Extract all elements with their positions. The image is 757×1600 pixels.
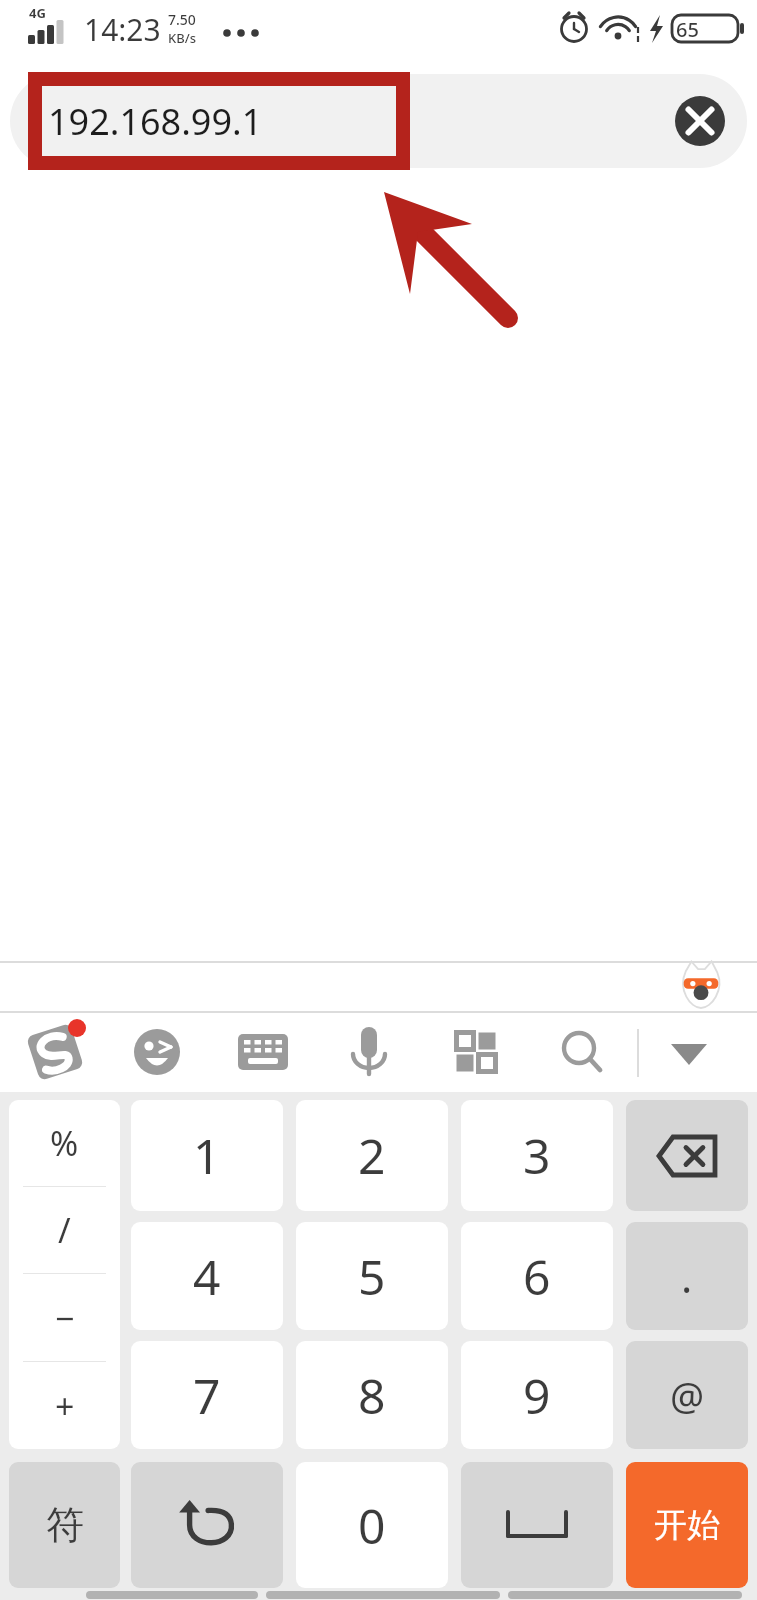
staticText: 3 [523, 1123, 551, 1188]
staticText: 14:23 [84, 9, 161, 50]
staticText: % [50, 1120, 79, 1166]
button[interactable]: Keyboard layout [227, 1016, 299, 1088]
button[interactable]: Sogou mascot [677, 960, 725, 1008]
button[interactable]: More functions [440, 1016, 512, 1088]
staticText: 符 [46, 1501, 84, 1549]
staticText: 开始 [654, 1504, 720, 1546]
button[interactable]: Clear text [675, 96, 725, 146]
staticText: 8 [358, 1363, 386, 1428]
staticText: − [55, 1295, 75, 1341]
button[interactable]: + [9, 1362, 120, 1449]
button[interactable]: Sogou input settings [19, 1016, 91, 1088]
button[interactable]: 3 [461, 1100, 613, 1211]
button[interactable]: 6 [461, 1222, 613, 1330]
button[interactable]: 8 [296, 1341, 448, 1449]
staticText: 4 [193, 1244, 221, 1309]
button[interactable]: Emoji [121, 1016, 193, 1088]
button[interactable]: / [9, 1187, 120, 1273]
button[interactable]: 7 [131, 1341, 283, 1449]
staticText: + [55, 1383, 75, 1429]
staticText: 6 [523, 1244, 551, 1309]
button[interactable]: Undo [131, 1462, 283, 1588]
button[interactable]: Search [546, 1016, 618, 1088]
button[interactable]: 0 [296, 1462, 448, 1588]
button[interactable]: 4 [131, 1222, 283, 1330]
button[interactable]: 2 [296, 1100, 448, 1211]
staticText: KB/s [168, 29, 197, 47]
button[interactable]: . [626, 1222, 748, 1330]
staticText: 5 [358, 1244, 386, 1309]
staticText: 9 [523, 1363, 551, 1428]
button[interactable]: Space [461, 1462, 613, 1588]
staticText: 4G [29, 4, 46, 22]
staticText: . [681, 1248, 693, 1305]
staticText: 7.50 [168, 10, 196, 29]
staticText: 2 [358, 1123, 386, 1188]
button[interactable]: 5 [296, 1222, 448, 1330]
button[interactable]: % [9, 1100, 120, 1186]
staticText: 192.168.99.1 [48, 97, 263, 146]
staticText: 65 [676, 16, 699, 43]
button[interactable]: 1 [131, 1100, 283, 1211]
button[interactable]: 9 [461, 1341, 613, 1449]
button[interactable]: Voice input [333, 1016, 405, 1088]
staticText: 1 [193, 1123, 221, 1188]
button[interactable]: − [9, 1274, 120, 1361]
staticText: 7 [193, 1363, 221, 1428]
button[interactable]: Backspace [626, 1100, 748, 1211]
staticText: @ [670, 1369, 705, 1421]
staticText: 0 [358, 1493, 386, 1558]
button[interactable]: 开始 [626, 1462, 748, 1588]
button[interactable]: 符 [9, 1462, 120, 1588]
staticText: / [58, 1207, 71, 1253]
button[interactable]: @ [626, 1341, 748, 1449]
button[interactable]: 192.168.99.1 [10, 74, 747, 168]
button[interactable]: Hide keyboard [653, 1016, 725, 1088]
